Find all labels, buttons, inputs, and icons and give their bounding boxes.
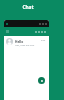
button[interactable]: Menu <box>5 29 10 34</box>
staticText: 9:45 <box>41 39 46 42</box>
button[interactable]: Hello <box>4 36 49 48</box>
button[interactable]: New chat <box>38 77 45 84</box>
staticText: Hello <box>15 40 24 44</box>
staticText: Chat <box>22 4 34 11</box>
staticText: Hey, how are you <box>15 43 35 46</box>
